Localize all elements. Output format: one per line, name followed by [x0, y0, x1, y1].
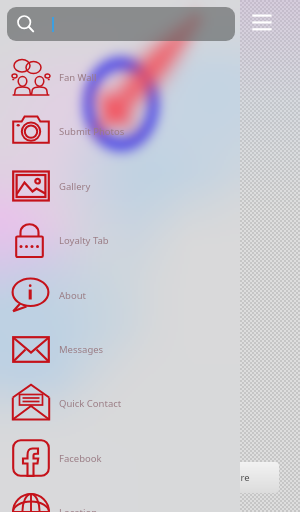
staticText: Fan Wall — [59, 71, 97, 84]
staticText: About — [59, 289, 86, 302]
staticText: Messages — [59, 343, 104, 356]
button[interactable]: Open menu — [248, 8, 276, 36]
staticText: Gallery — [59, 180, 91, 193]
staticText: Location — [59, 506, 98, 512]
button[interactable]: Submit Photos — [0, 104, 240, 158]
staticText: Facebook — [59, 452, 102, 465]
button[interactable]: Facebook — [0, 431, 240, 485]
button[interactable] — [7, 7, 235, 41]
staticText: Quick Contact — [59, 397, 122, 410]
button[interactable]: Quick Contact — [0, 376, 240, 430]
button[interactable]: Gallery — [0, 159, 240, 213]
staticText: Submit Photos — [59, 125, 125, 138]
staticText: Share — [224, 471, 250, 484]
button[interactable]: Location — [0, 485, 240, 512]
button[interactable]: Fan Wall — [0, 50, 240, 104]
button[interactable]: Messages — [0, 322, 240, 376]
button[interactable]: Share — [194, 462, 279, 493]
staticText: Loyalty Tab — [59, 234, 109, 247]
button[interactable]: About — [0, 268, 240, 322]
button[interactable]: Loyalty Tab — [0, 213, 240, 267]
